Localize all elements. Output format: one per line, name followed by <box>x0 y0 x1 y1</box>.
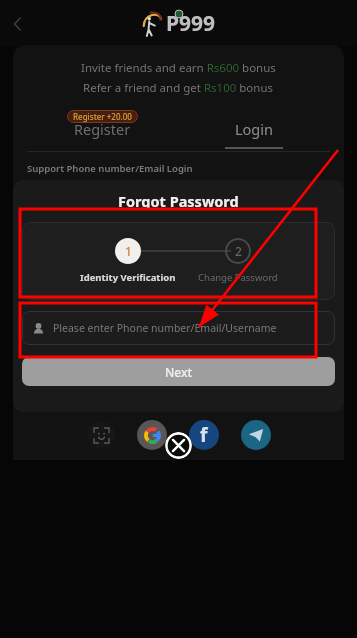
staticText: Next <box>165 364 193 380</box>
staticText: 1 <box>125 243 132 259</box>
staticText: Forgot Password <box>118 191 239 211</box>
button[interactable]: Please enter Phone number/Email/Username <box>22 311 335 345</box>
button[interactable]: Sign in with Facebook <box>189 420 219 450</box>
staticText: Register +20.00 <box>73 111 132 122</box>
staticText: Invite friends and earn Rs600 bonus <box>81 60 276 76</box>
staticText: Login <box>235 119 273 139</box>
staticText: Support Phone number/Email Login <box>27 162 344 175</box>
button[interactable]: Login <box>178 119 330 149</box>
button[interactable]: Face login <box>87 421 115 449</box>
button[interactable]: Next <box>22 357 335 386</box>
staticText: Identity Verification <box>80 271 176 284</box>
button[interactable]: Close <box>165 432 192 459</box>
staticText: Refer a friend and get Rs100 bonus <box>83 80 274 96</box>
button[interactable]: Register +20.00 <box>27 106 178 149</box>
button[interactable]: Sign in with Google <box>137 420 167 450</box>
staticText: 2 <box>235 243 242 259</box>
button[interactable]: Sign in with Telegram <box>241 420 271 450</box>
staticText: Please enter Phone number/Email/Username <box>53 321 277 335</box>
staticText: Register <box>74 119 131 139</box>
staticText: P999 <box>166 9 216 38</box>
button[interactable]: Back <box>6 12 30 36</box>
staticText: f <box>200 422 208 448</box>
staticText: Change Password <box>198 271 278 284</box>
